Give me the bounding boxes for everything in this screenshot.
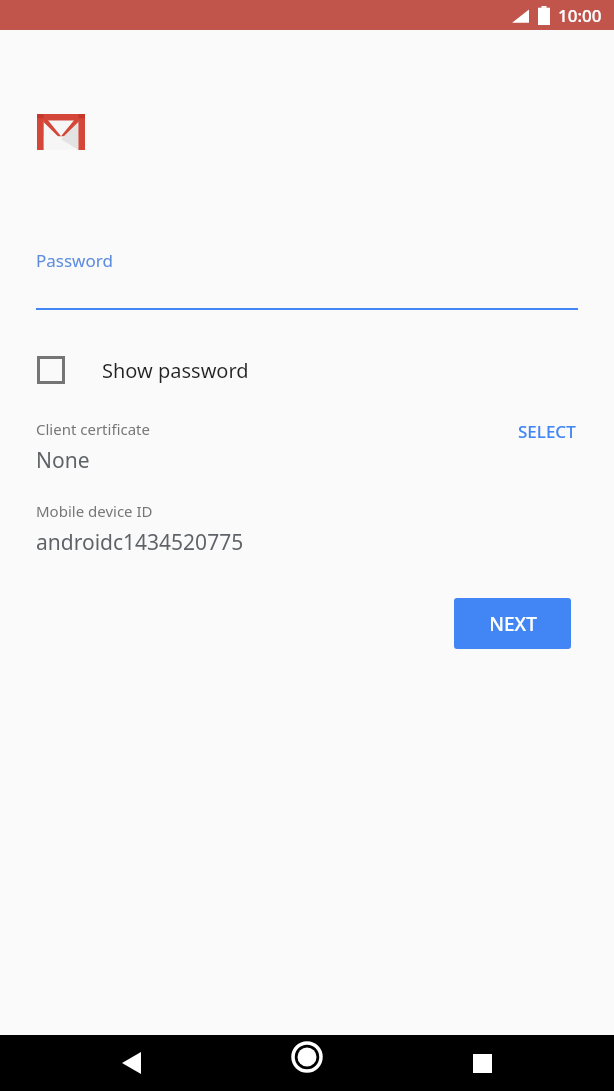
- button[interactable]: SELECT: [516, 419, 578, 444]
- button[interactable]: Recent apps: [462, 1043, 502, 1083]
- button[interactable]: Home: [285, 1035, 329, 1079]
- button[interactable]: NEXT: [454, 598, 571, 649]
- staticText: Client certificate: [36, 419, 150, 439]
- staticText: androidc1434520775: [36, 528, 244, 557]
- staticText: Password: [36, 249, 113, 272]
- button[interactable]: Back: [112, 1043, 152, 1083]
- staticText: Mobile device ID: [36, 501, 153, 521]
- staticText: None: [36, 446, 90, 475]
- staticText: SELECT: [518, 420, 576, 443]
- staticText: Show password: [102, 357, 249, 384]
- staticText: NEXT: [489, 611, 537, 637]
- button[interactable]: Show password: [0, 347, 614, 393]
- staticText: 10:00: [558, 4, 602, 27]
